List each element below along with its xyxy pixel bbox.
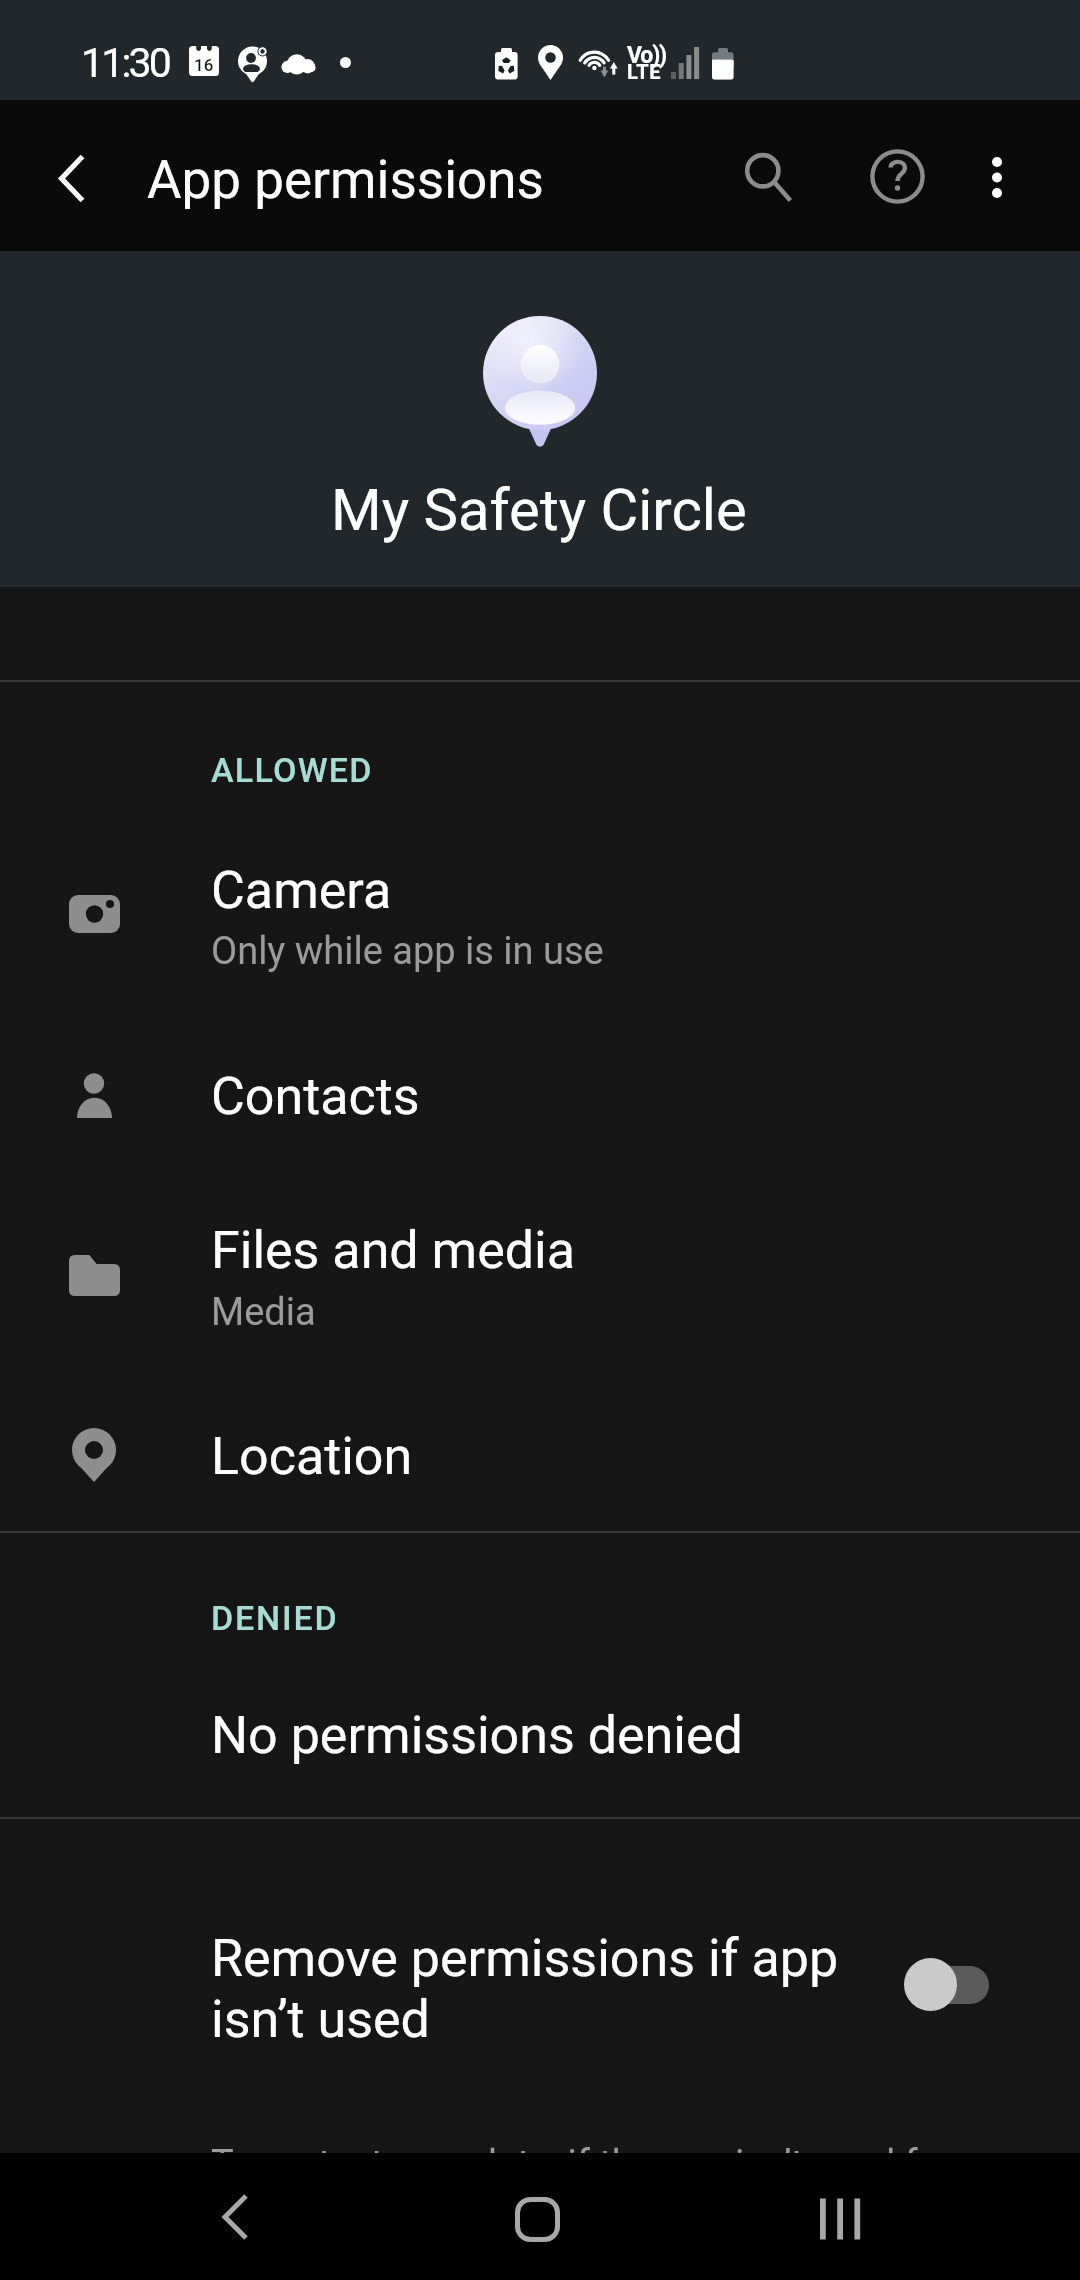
staticText: Only while app is in use	[211, 929, 604, 974]
button[interactable]: Contacts	[0, 1005, 1080, 1185]
staticText: Vo))	[627, 42, 666, 69]
button[interactable]: Navigate up	[21, 128, 121, 228]
staticText: No permissions denied	[211, 1705, 743, 1766]
button[interactable]: Files and media	[0, 1185, 1080, 1365]
staticText: My Safety Circle	[331, 476, 747, 544]
staticText: ALLOWED	[211, 750, 373, 790]
staticText: Remove permissions if app isn’t used	[211, 1928, 839, 2049]
button[interactable]: Camera	[0, 824, 1080, 1004]
button[interactable]: Remove permissions if app isn’t used	[0, 1869, 1080, 2084]
staticText: LTE	[627, 60, 661, 83]
button[interactable]: Remove permissions if app isn’t used	[890, 1944, 1003, 2026]
staticText: Camera	[211, 860, 392, 921]
button[interactable]: Recent apps	[785, 2155, 895, 2280]
button[interactable]: Location	[0, 1365, 1080, 1545]
button[interactable]: More options	[947, 127, 1047, 227]
staticText: 11:30	[81, 39, 170, 87]
staticText: Location	[211, 1426, 413, 1487]
staticText: 16	[194, 55, 214, 75]
staticText: Files and media	[211, 1220, 575, 1281]
staticText: To protect your data, if the app isn’t u…	[211, 2142, 953, 2187]
button[interactable]: Back	[180, 2153, 290, 2280]
staticText: Media	[211, 1290, 316, 1335]
staticText: Contacts	[211, 1066, 420, 1127]
button[interactable]: Help	[847, 126, 947, 226]
staticText: App permissions	[147, 149, 544, 211]
button[interactable]: Search	[718, 127, 818, 227]
staticText: DENIED	[211, 1598, 339, 1638]
button[interactable]: Home	[482, 2156, 592, 2280]
